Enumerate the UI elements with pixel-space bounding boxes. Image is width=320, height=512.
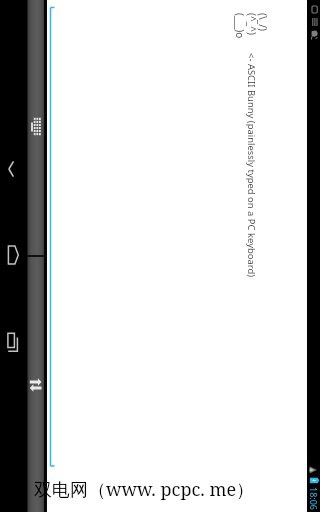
staticText: 18:06 xyxy=(308,487,320,511)
staticText: 双电网（www. pcpc. me） xyxy=(34,477,255,502)
button[interactable]: Home xyxy=(0,226,27,284)
staticText: <- ASCII Bunny (painlessly typed on a PC… xyxy=(245,53,258,278)
staticText: (___)o xyxy=(233,13,247,39)
button[interactable]: Back xyxy=(0,140,27,198)
button[interactable]: Show keyboard xyxy=(27,108,44,146)
button[interactable]: Resize window xyxy=(27,372,44,402)
staticText: (\_/) xyxy=(256,13,270,31)
button[interactable]: Recent apps xyxy=(0,313,27,371)
staticText: (^_^) xyxy=(245,13,259,35)
